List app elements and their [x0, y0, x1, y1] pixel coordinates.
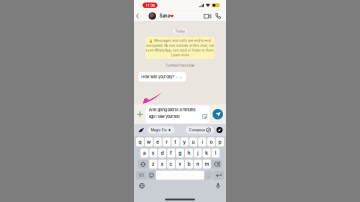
staticText: 11:36	[145, 3, 154, 8]
button[interactable]: h	[185, 148, 193, 157]
staticText: m	[205, 161, 209, 167]
staticText: Magic Fix	[151, 128, 167, 132]
button[interactable]: e	[154, 137, 162, 146]
staticText: k	[205, 150, 208, 156]
button[interactable]: u	[189, 137, 197, 146]
staticText: h	[187, 150, 190, 156]
button[interactable]: Shift	[138, 160, 148, 169]
staticText: c	[170, 161, 173, 167]
button[interactable]: b	[185, 160, 193, 169]
button[interactable]: g	[176, 148, 184, 157]
staticText: i	[202, 139, 203, 145]
button[interactable]: Writing tools	[135, 124, 147, 136]
staticText: w	[147, 139, 151, 145]
button[interactable]: Attach	[134, 104, 146, 124]
staticText: s	[152, 150, 155, 156]
button[interactable]: Send	[210, 104, 226, 124]
button[interactable]: c	[167, 160, 175, 169]
button[interactable]: Return	[213, 171, 224, 180]
staticText: Was going bad till a minutes ago i saw y…	[149, 107, 196, 119]
button[interactable]: Delete	[212, 160, 222, 169]
staticText: q	[138, 139, 141, 145]
button[interactable]: z	[149, 160, 157, 169]
button[interactable]: Voice call	[213, 10, 223, 21]
button[interactable]: x	[158, 160, 166, 169]
staticText: z	[152, 161, 155, 167]
button[interactable]: p	[216, 137, 224, 146]
staticText: 🔒 Messages and calls are end-to-end encr…	[145, 39, 214, 57]
staticText: n	[196, 161, 199, 167]
button[interactable]: Emoji	[148, 171, 155, 180]
button[interactable]: Compose	[186, 126, 214, 134]
staticText: v	[178, 161, 181, 167]
button[interactable]: Apple Intelligence	[214, 124, 225, 136]
staticText: Today	[175, 29, 185, 33]
staticText: 11:35	[176, 76, 183, 79]
button[interactable]: j	[194, 148, 202, 157]
button[interactable]: n	[194, 160, 202, 169]
button[interactable]: Sana	[149, 10, 173, 21]
staticText: t	[174, 139, 176, 145]
staticText: o	[210, 139, 213, 145]
staticText: Sana	[160, 13, 170, 19]
button[interactable]: Magic Fix	[147, 126, 174, 134]
staticText: r	[166, 139, 168, 145]
staticText: u	[192, 139, 195, 145]
staticText: p	[219, 139, 222, 145]
button[interactable]: .	[205, 171, 212, 180]
button[interactable]	[156, 171, 204, 180]
staticText: g	[178, 150, 181, 156]
button[interactable]: 123	[136, 171, 147, 180]
staticText: x	[161, 161, 164, 167]
staticText: 1 unread message	[165, 63, 194, 67]
staticText: j	[197, 150, 198, 156]
staticText: d	[161, 150, 164, 156]
button[interactable]: s	[149, 148, 157, 157]
button[interactable]: Dictate	[212, 182, 225, 190]
button[interactable]: Switch keyboard	[135, 182, 148, 190]
staticText: a	[143, 150, 146, 156]
staticText: f	[170, 150, 172, 156]
staticText: 123	[139, 173, 144, 177]
button[interactable]: l	[212, 148, 219, 157]
button[interactable]: a	[140, 148, 148, 157]
button[interactable]: y	[180, 137, 188, 146]
button[interactable]: Video call	[202, 10, 213, 21]
button[interactable]: f	[167, 148, 175, 157]
staticText: e	[156, 139, 159, 145]
button[interactable]: v	[176, 160, 184, 169]
staticText: b	[187, 161, 190, 167]
staticText: y	[183, 139, 186, 145]
staticText: How was your day?	[141, 75, 174, 79]
staticText: Compose	[189, 128, 205, 132]
staticText: .	[208, 173, 209, 178]
button[interactable]: d	[158, 148, 166, 157]
staticText: l	[215, 150, 216, 156]
button[interactable]: r	[163, 137, 171, 146]
button[interactable]: i	[198, 137, 206, 146]
button[interactable]: t	[172, 137, 179, 146]
button[interactable]: k	[203, 148, 211, 157]
button[interactable]: m	[203, 160, 211, 169]
button[interactable]: w	[145, 137, 153, 146]
button[interactable]: q	[136, 137, 144, 146]
button[interactable]: o	[207, 137, 215, 146]
button[interactable]: Back	[135, 10, 141, 21]
